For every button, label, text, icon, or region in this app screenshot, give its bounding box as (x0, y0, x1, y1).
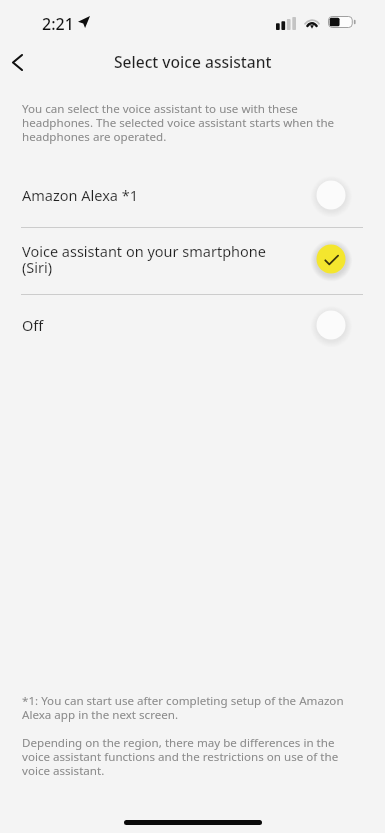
staticText: Voice assistant on your smartphone (Siri… (22, 241, 280, 277)
staticText: *1: You can start use after completing s… (22, 694, 347, 722)
staticText: You can select the voice assistant to us… (22, 102, 347, 144)
button[interactable]: Voice assistant on your smartphone (Siri… (0, 241, 385, 277)
staticText: Depending on the region, there may be di… (22, 736, 347, 778)
staticText: Off (22, 315, 280, 335)
staticText: 2:21 (42, 13, 74, 35)
button[interactable]: Off (0, 308, 385, 342)
button[interactable]: Amazon Alexa *1 (0, 178, 385, 212)
staticText: Amazon Alexa *1 (22, 185, 280, 205)
button[interactable]: Back (0, 40, 39, 84)
staticText: Select voice assistant (114, 51, 272, 72)
